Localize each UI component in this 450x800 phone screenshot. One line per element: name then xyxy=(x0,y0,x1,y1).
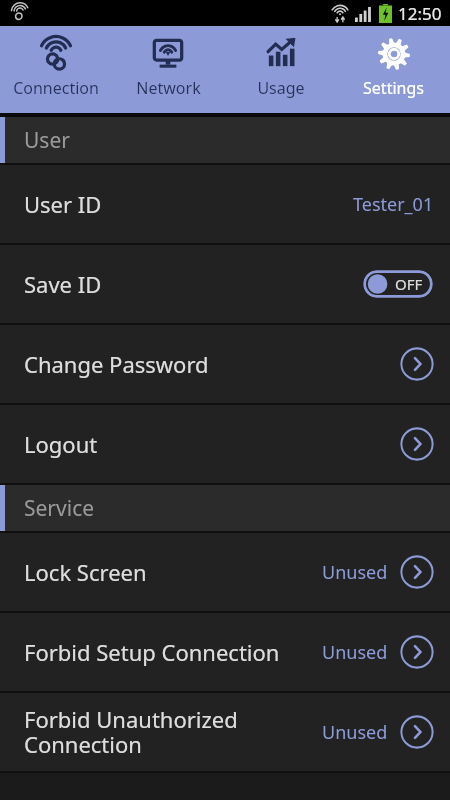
button[interactable]: Open xyxy=(400,555,434,589)
button[interactable]: User ID xyxy=(0,165,450,243)
staticText: User xyxy=(24,126,70,155)
staticText: Tester_01 xyxy=(353,192,434,217)
staticText: Unused xyxy=(322,720,388,745)
button[interactable]: Connection xyxy=(0,26,112,113)
button[interactable]: Forbid Unauthorized Connection xyxy=(0,693,450,771)
button[interactable]: Network xyxy=(112,26,224,113)
button[interactable]: Lock Screen xyxy=(0,533,450,611)
staticText: Forbid Unauthorized Connection xyxy=(24,704,322,760)
staticText: 12:50 xyxy=(398,2,442,25)
button[interactable]: Usage xyxy=(224,26,337,113)
button[interactable]: Logout xyxy=(0,405,450,483)
staticText: Unused xyxy=(322,640,388,665)
button[interactable]: Change Password xyxy=(0,325,450,403)
staticText: Change Password xyxy=(24,349,400,379)
staticText: Lock Screen xyxy=(24,557,322,587)
button[interactable]: Save ID xyxy=(0,245,450,323)
staticText: Network xyxy=(136,77,201,99)
button[interactable]: Open xyxy=(400,715,434,749)
staticText: Connection xyxy=(13,77,99,99)
button[interactable]: Open xyxy=(400,427,434,461)
staticText: OFF xyxy=(395,274,423,294)
button[interactable]: Settings xyxy=(337,26,450,113)
button[interactable]: Save ID toggle, off xyxy=(363,270,433,298)
button[interactable]: Open xyxy=(400,635,434,669)
staticText: Logout xyxy=(24,429,400,459)
staticText: User ID xyxy=(24,189,353,219)
button[interactable]: Forbid Setup Connection xyxy=(0,613,450,691)
staticText: Settings xyxy=(363,77,424,99)
staticText: Save ID xyxy=(24,269,363,299)
staticText: Unused xyxy=(322,560,388,585)
staticText: Usage xyxy=(257,77,305,99)
staticText: Forbid Setup Connection xyxy=(24,637,322,667)
staticText: Service xyxy=(24,494,95,523)
button[interactable]: Open xyxy=(400,347,434,381)
